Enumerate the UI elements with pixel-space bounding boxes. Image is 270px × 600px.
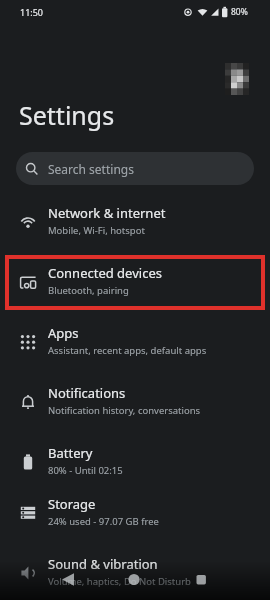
staticText: Network & internet	[48, 204, 166, 222]
staticText: Mobile, Wi-Fi, hotspot	[48, 224, 145, 237]
button[interactable]: Battery	[0, 432, 270, 492]
button[interactable]: Apps	[0, 312, 270, 372]
staticText: Storage	[48, 495, 96, 513]
button[interactable]	[55, 570, 79, 589]
staticText: Notifications	[48, 384, 126, 402]
button[interactable]: Notifications	[0, 372, 270, 432]
staticText: 11:50	[20, 6, 44, 18]
button[interactable]: Connected devices	[0, 252, 270, 312]
staticText: 80% - Until 02:15	[48, 464, 123, 477]
button[interactable]: Search settings	[16, 152, 254, 185]
staticText: 24% used - 97.07 GB free	[48, 515, 159, 528]
button[interactable]: Network & internet	[0, 192, 270, 252]
staticText: Volume, haptics, Do Not Disturb	[48, 575, 191, 588]
staticText: Bluetooth, pairing	[48, 284, 129, 297]
staticText: Sound & vibration	[48, 555, 158, 573]
button[interactable]: Storage	[0, 483, 270, 543]
staticText: Battery	[48, 444, 93, 462]
staticText: Search settings	[48, 161, 134, 177]
staticText: Notification history, conversations	[48, 404, 201, 417]
staticText: Assistant, recent apps, default apps	[48, 344, 207, 357]
button[interactable]: Sound & vibration	[0, 543, 270, 600]
button[interactable]	[189, 570, 213, 589]
staticText: 80%	[231, 6, 248, 18]
button[interactable]	[122, 570, 146, 589]
staticText: Connected devices	[48, 264, 162, 282]
staticText: Apps	[48, 324, 79, 342]
staticText: Settings	[19, 98, 115, 132]
